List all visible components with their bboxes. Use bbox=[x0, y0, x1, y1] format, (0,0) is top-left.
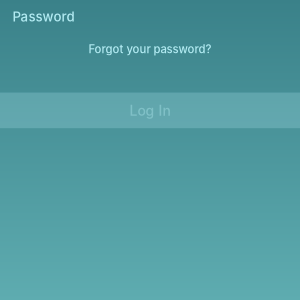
button[interactable]: Log In bbox=[0, 93, 300, 128]
staticText: Password bbox=[12, 9, 74, 25]
button[interactable]: Forgot your password? bbox=[0, 38, 300, 60]
staticText: Log In bbox=[129, 102, 170, 119]
secureTextField[interactable]: Password bbox=[0, 2, 300, 32]
staticText: Forgot your password? bbox=[88, 42, 211, 56]
